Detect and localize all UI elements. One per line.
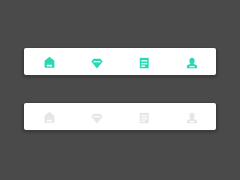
button[interactable]: Offers (72, 103, 120, 130)
button[interactable]: Articles (120, 103, 168, 130)
button[interactable]: Home (24, 103, 72, 130)
button[interactable]: Articles (120, 48, 168, 75)
button[interactable]: Offers (72, 48, 120, 75)
button[interactable]: Profile (168, 48, 216, 75)
button[interactable]: Home (24, 48, 72, 75)
button[interactable]: Profile (168, 103, 216, 130)
